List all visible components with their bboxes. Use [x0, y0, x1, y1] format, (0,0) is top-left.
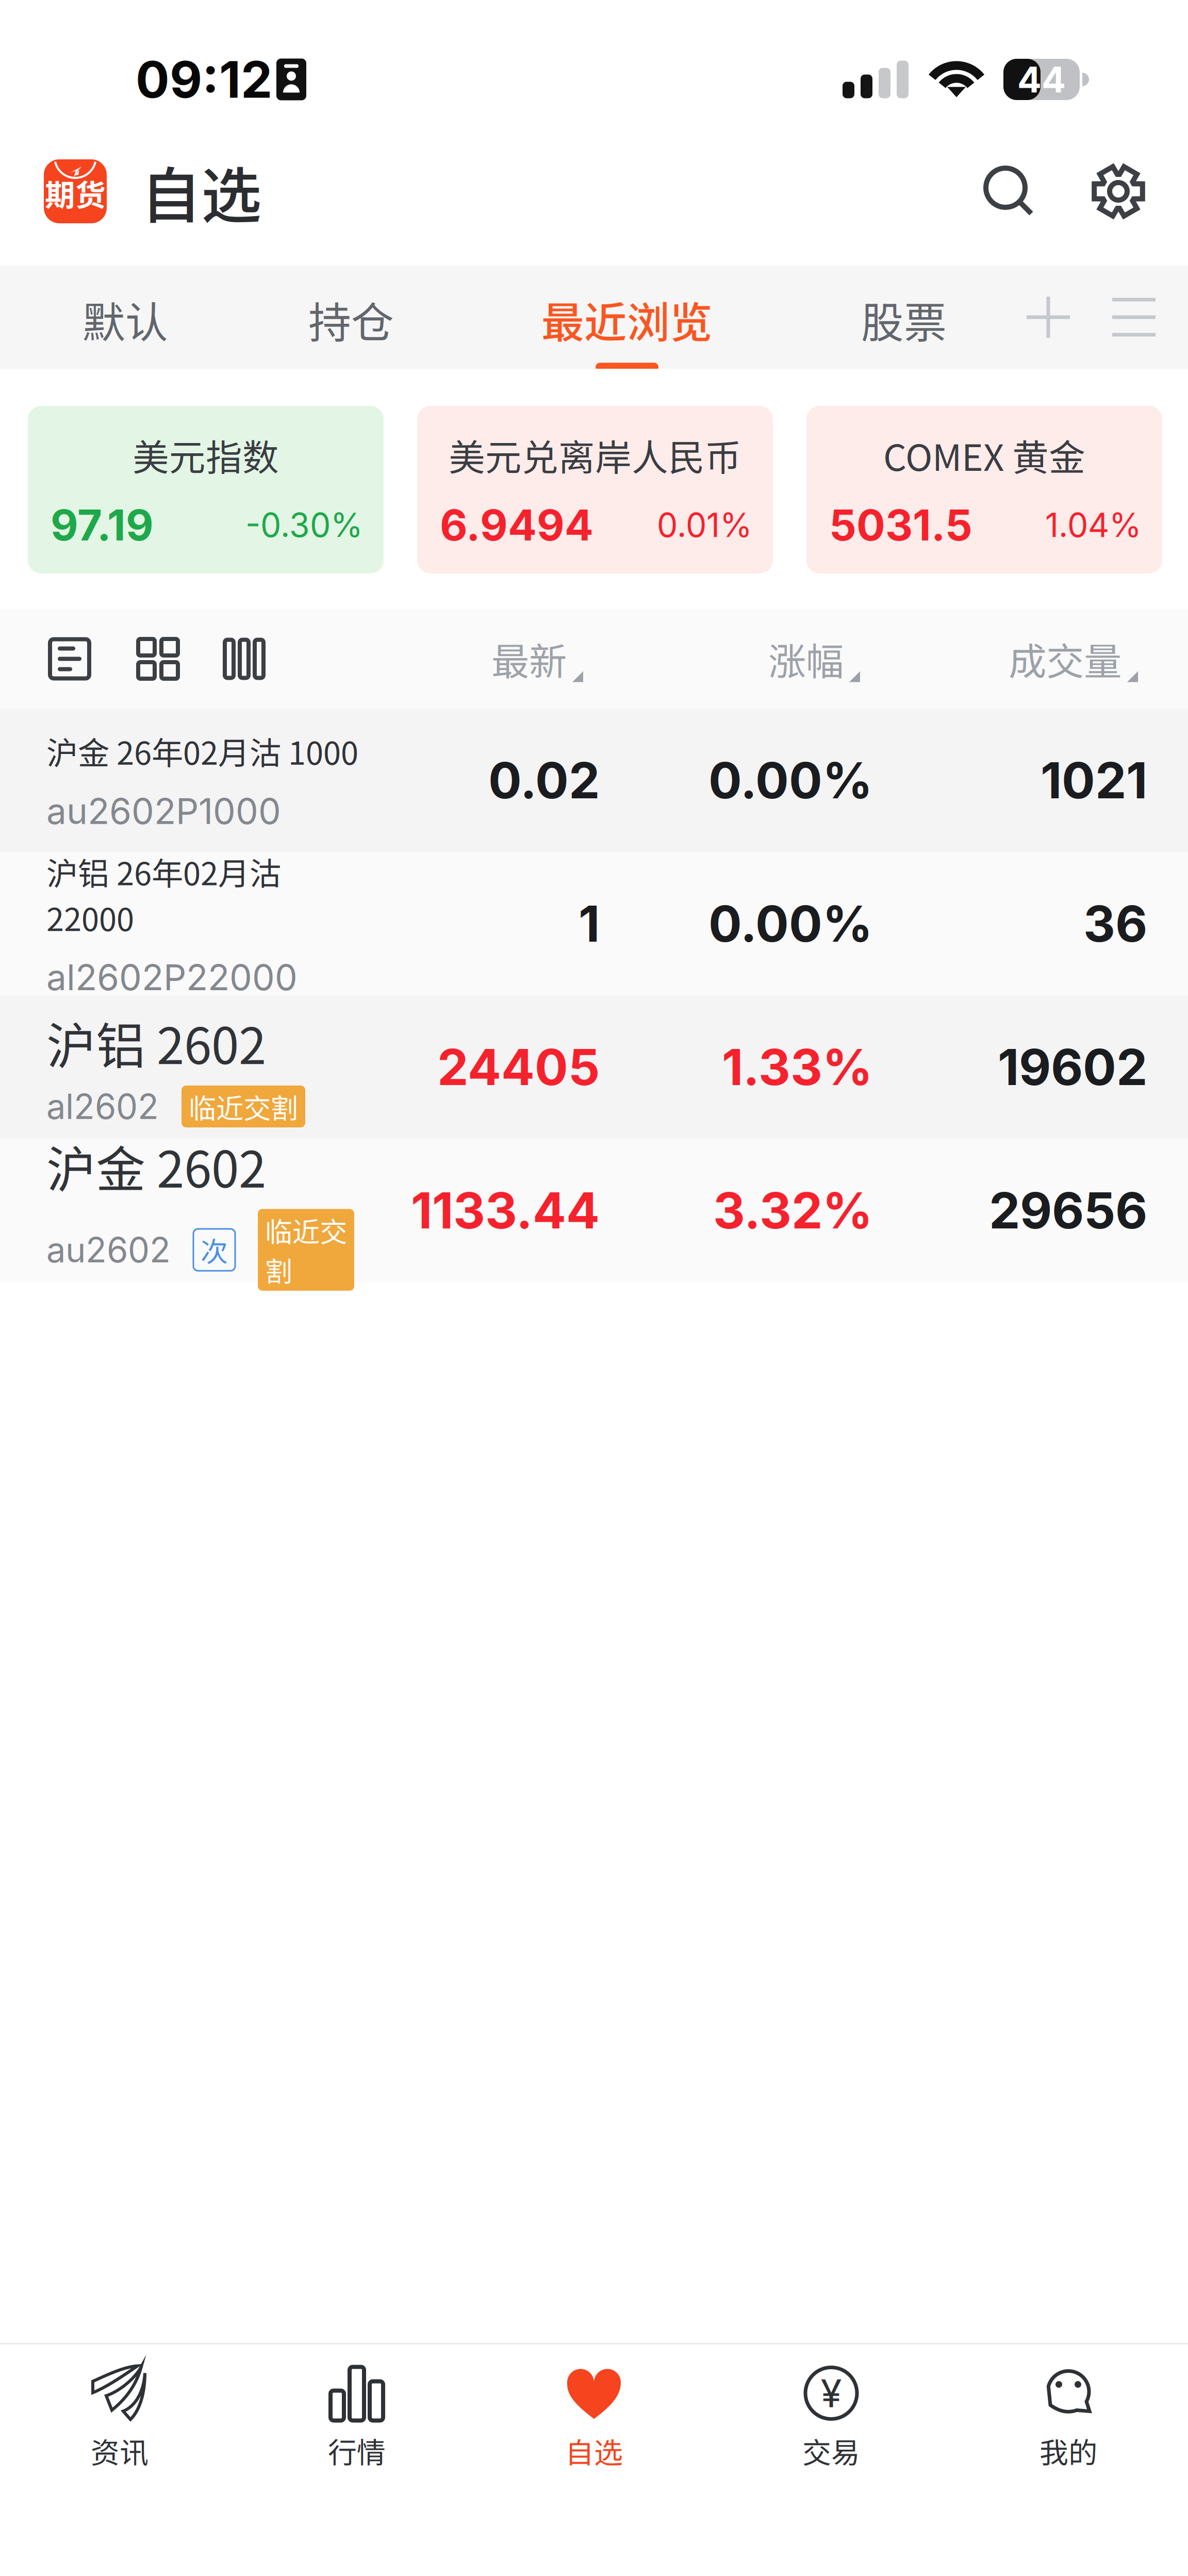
staticText: 行情: [328, 2430, 386, 2472]
button[interactable]: 最近浏览: [523, 266, 731, 369]
button[interactable]: 搜索: [968, 148, 1050, 235]
button[interactable]: 行情: [238, 2344, 475, 2575]
staticText: 美元兑离岸人民币: [449, 429, 741, 481]
button[interactable]: 资讯: [1, 2344, 238, 2575]
staticText: 0.00%: [708, 750, 873, 810]
staticText: 3.32%: [713, 1180, 873, 1240]
staticText: 持仓: [308, 289, 394, 350]
button[interactable]: 默认: [41, 266, 209, 369]
staticText: 44: [1017, 58, 1066, 101]
staticText: COMEX 黄金: [883, 429, 1085, 481]
staticText: 成交量: [1009, 631, 1121, 686]
staticText: 期货: [45, 171, 106, 215]
button[interactable]: 列表视图: [50, 609, 89, 709]
staticText: 交易: [802, 2430, 860, 2472]
staticText: 资讯: [91, 2430, 148, 2472]
staticText: 股票: [861, 289, 947, 350]
button[interactable]: 涨幅: [768, 609, 860, 709]
staticText: 0.01%: [657, 505, 752, 545]
staticText: 24405: [437, 1037, 600, 1097]
staticText: 1: [579, 894, 600, 954]
button[interactable]: 股票: [820, 266, 988, 369]
staticText: 1.04%: [1045, 505, 1142, 545]
staticText: 临近交割: [189, 1087, 298, 1126]
staticText: 沪铝 26年02月沽 22000: [46, 848, 281, 940]
staticText: 自选: [565, 2430, 623, 2472]
staticText: 最近浏览: [541, 289, 713, 350]
staticText: ¥: [821, 2370, 842, 2416]
staticText: 19602: [998, 1037, 1147, 1097]
staticText: 29656: [989, 1180, 1147, 1240]
staticText: 6.9494: [440, 499, 593, 551]
staticText: 0.00%: [708, 894, 873, 954]
staticText: 我的: [1039, 2430, 1097, 2472]
button[interactable]: 美元兑离岸人民币: [417, 406, 773, 573]
staticText: 1.33%: [722, 1037, 873, 1097]
staticText: 0.02: [488, 750, 600, 810]
staticText: 沪金 26年02月沽 1000: [46, 728, 358, 774]
button[interactable]: COMEX 黄金: [806, 406, 1162, 573]
button[interactable]: 最新: [491, 609, 583, 709]
button[interactable]: 设置: [1075, 148, 1162, 235]
button[interactable]: 美元指数: [28, 406, 384, 573]
staticText: 1021: [1041, 750, 1147, 810]
button[interactable]: 沪金 2602: [0, 1139, 1188, 1282]
staticText: al2602: [46, 1086, 159, 1127]
button[interactable]: 编辑列表: [1091, 266, 1177, 369]
button[interactable]: 分栏视图: [225, 609, 263, 709]
staticText: 09:12: [136, 49, 272, 110]
staticText: 5031.5: [829, 499, 972, 551]
staticText: 1133.44: [411, 1180, 600, 1240]
staticText: 97.19: [51, 499, 154, 551]
staticText: al2602P22000: [46, 956, 298, 999]
staticText: 沪金 2602: [46, 1130, 266, 1202]
staticText: 最新: [491, 631, 567, 686]
button[interactable]: ¥: [713, 2344, 950, 2575]
staticText: 36: [1083, 894, 1147, 954]
button[interactable]: 沪金 26年02月沽 1000: [0, 709, 1188, 852]
button[interactable]: 成交量: [1009, 609, 1138, 709]
staticText: 自选: [141, 148, 261, 235]
button[interactable]: 网格视图: [138, 609, 178, 709]
button[interactable]: 沪铝 26年02月沽 22000: [0, 852, 1188, 995]
staticText: au2602P1000: [46, 789, 281, 833]
button[interactable]: 自选: [475, 2344, 713, 2575]
staticText: -0.30%: [245, 505, 363, 545]
staticText: 默认: [82, 289, 168, 350]
staticText: 涨幅: [768, 631, 844, 686]
button[interactable]: 持仓: [267, 266, 435, 369]
staticText: 美元指数: [133, 429, 279, 481]
staticText: 沪铝 2602: [46, 1007, 266, 1078]
button[interactable]: 我的: [950, 2344, 1187, 2575]
staticText: 次: [201, 1230, 228, 1270]
button[interactable]: 沪铝 2602: [0, 995, 1188, 1139]
staticText: 临近交割: [265, 1210, 347, 1290]
staticText: au2602: [46, 1229, 171, 1271]
button[interactable]: 添加自选: [1005, 266, 1091, 369]
